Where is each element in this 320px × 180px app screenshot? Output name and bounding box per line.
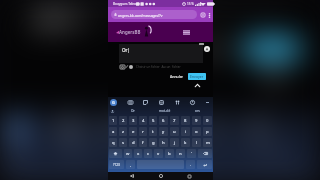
staticText: e bbox=[132, 129, 135, 135]
button[interactable]: p bbox=[203, 127, 212, 136]
button[interactable]: Or bbox=[25, 142, 125, 166]
button[interactable]: 9 bbox=[257, 169, 284, 180]
button[interactable]: 9 bbox=[192, 116, 201, 125]
button[interactable]: 1 bbox=[109, 116, 117, 125]
button[interactable]: r bbox=[139, 127, 147, 136]
button[interactable]: Google bbox=[110, 99, 117, 106]
button[interactable]: z bbox=[119, 127, 127, 136]
button[interactable]: v bbox=[154, 149, 163, 158]
button[interactable]: Enter bbox=[197, 160, 212, 169]
button[interactable]: 7 bbox=[189, 169, 217, 180]
button[interactable]: f bbox=[139, 138, 147, 147]
button[interactable]: 3 bbox=[64, 169, 89, 180]
button[interactable]: s bbox=[119, 138, 127, 147]
button[interactable]: Sticker bbox=[104, 117, 122, 136]
button[interactable]: 0 bbox=[290, 169, 317, 180]
button[interactable]: 2 bbox=[34, 169, 58, 180]
button[interactable]: Menu bbox=[181, 27, 191, 37]
button[interactable]: y bbox=[159, 127, 168, 136]
button[interactable]: n bbox=[176, 149, 185, 158]
button[interactable]: angers-bb.com/messages/?v bbox=[111, 10, 197, 19]
button[interactable]: g bbox=[149, 138, 157, 147]
button[interactable]: Voice input bbox=[108, 107, 116, 115]
button[interactable]: i bbox=[181, 127, 190, 136]
button[interactable]: 1 bbox=[3, 169, 28, 180]
button[interactable]: ' bbox=[187, 149, 196, 158]
button[interactable]: Sticker bbox=[142, 99, 148, 105]
button[interactable]: Settings bbox=[189, 99, 195, 105]
button[interactable]: Stickers bbox=[202, 117, 220, 136]
button[interactable]: Or| bbox=[119, 44, 203, 63]
button[interactable]: mot-clé bbox=[149, 107, 181, 115]
button[interactable]: ?123 bbox=[109, 160, 124, 169]
button[interactable]: Clipboard history bbox=[153, 117, 171, 136]
button[interactable]: mot-clé bbox=[125, 142, 223, 166]
button[interactable]: Clipboard bbox=[127, 99, 133, 105]
button[interactable]: ors bbox=[223, 142, 320, 166]
button[interactable]: 4 bbox=[139, 116, 147, 125]
button[interactable]: 4 bbox=[95, 169, 119, 180]
button[interactable]: 6 bbox=[159, 116, 168, 125]
button[interactable]: x bbox=[134, 149, 142, 158]
button[interactable]: Clipboard history bbox=[158, 99, 164, 105]
button[interactable]: 0 bbox=[203, 116, 212, 125]
button[interactable]: o bbox=[192, 127, 201, 136]
button[interactable]: Home bbox=[155, 172, 166, 180]
button[interactable]: Shift bbox=[109, 149, 122, 158]
button[interactable]: Annuler bbox=[168, 73, 186, 80]
button[interactable]: h bbox=[159, 138, 168, 147]
button[interactable]: 7 bbox=[170, 116, 179, 125]
button[interactable]: Voice input bbox=[0, 142, 25, 166]
button[interactable]: Space bbox=[137, 160, 184, 169]
button[interactable]: Or bbox=[116, 107, 149, 115]
button[interactable]: l bbox=[192, 138, 201, 147]
button[interactable]: Tabs bbox=[199, 11, 206, 18]
button[interactable]: More bbox=[296, 120, 311, 136]
button[interactable]: 5 bbox=[149, 116, 157, 125]
button[interactable]: More bbox=[205, 100, 210, 105]
button[interactable]: 5 bbox=[125, 169, 150, 180]
button[interactable]: q bbox=[109, 138, 117, 147]
button[interactable]: Annuler bbox=[183, 38, 238, 59]
button[interactable]: a bbox=[109, 127, 117, 136]
button[interactable]: 8 bbox=[223, 169, 250, 180]
button[interactable]: Collapse bbox=[260, 63, 284, 87]
button[interactable]: Clipboard bbox=[58, 117, 77, 136]
button[interactable]: w bbox=[124, 149, 132, 158]
button[interactable]: 8 bbox=[181, 116, 190, 125]
staticText: j bbox=[174, 140, 176, 146]
staticText: l bbox=[196, 140, 198, 146]
button[interactable]: t bbox=[149, 127, 157, 136]
button[interactable]: b bbox=[165, 149, 174, 158]
button[interactable]: Backspace bbox=[198, 149, 212, 158]
button[interactable]: Recents bbox=[184, 172, 195, 180]
button[interactable]: Stickers bbox=[174, 99, 180, 105]
button[interactable]: , bbox=[126, 160, 135, 169]
button[interactable]: Emoji bbox=[129, 65, 133, 69]
button[interactable]: Google bbox=[6, 117, 28, 139]
button[interactable]: 2 bbox=[119, 116, 127, 125]
button[interactable]: c bbox=[144, 149, 152, 158]
button[interactable]: Envoyer bbox=[188, 73, 206, 80]
button[interactable]: k bbox=[181, 138, 190, 147]
staticText: Envoyer bbox=[190, 74, 204, 79]
button[interactable]: j bbox=[170, 138, 179, 147]
button[interactable]: More options bbox=[206, 12, 212, 18]
button[interactable]: Envoyer bbox=[244, 38, 299, 59]
button[interactable]: u bbox=[170, 127, 179, 136]
button[interactable]: Collapse bbox=[193, 81, 201, 89]
button[interactable]: m bbox=[203, 138, 212, 147]
button[interactable]: ors bbox=[181, 107, 213, 115]
button[interactable]: Account bbox=[204, 46, 210, 52]
button[interactable]: Attach photo bbox=[120, 65, 125, 69]
button[interactable]: . bbox=[186, 160, 195, 169]
button[interactable]: Settings bbox=[247, 117, 266, 136]
button[interactable]: 3 bbox=[129, 116, 137, 125]
button[interactable]: Back bbox=[126, 172, 137, 180]
button[interactable]: e bbox=[129, 127, 137, 136]
button[interactable]: 6 bbox=[156, 169, 183, 180]
button[interactable]: Or| bbox=[34, 0, 290, 8]
button[interactable]: d bbox=[129, 138, 137, 147]
